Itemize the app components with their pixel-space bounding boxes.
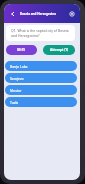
button[interactable]: Timer xyxy=(67,9,76,18)
button[interactable]: Banja Luka xyxy=(5,61,77,71)
button[interactable]: Back xyxy=(7,8,18,19)
button[interactable]: Tuzla xyxy=(5,97,77,107)
button[interactable]: 00:15 xyxy=(6,45,37,55)
staticText: Sarajevo xyxy=(10,76,24,81)
staticText: Tuzla xyxy=(10,100,19,105)
button[interactable]: Mostar xyxy=(5,85,77,95)
staticText: Attempt (1) xyxy=(50,48,69,52)
staticText: 00:15 xyxy=(17,48,26,52)
button[interactable]: Attempt (1) xyxy=(43,45,75,55)
staticText: Bosnia and Herzegovina xyxy=(20,12,56,16)
staticText: Banja Luka xyxy=(10,64,28,69)
staticText: Mostar xyxy=(10,88,22,93)
staticText: Q1. What is the capital city of Bosnia a… xyxy=(11,28,70,38)
button[interactable]: Sarajevo xyxy=(5,73,77,83)
